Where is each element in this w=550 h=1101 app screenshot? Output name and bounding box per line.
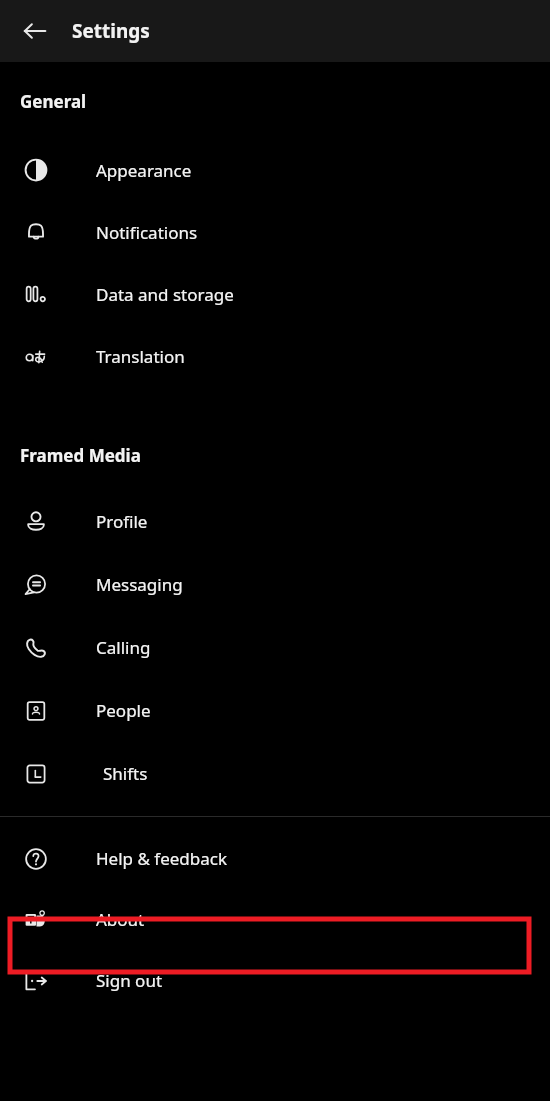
button[interactable]: Shifts <box>0 742 550 805</box>
staticText: Notifications <box>96 221 198 244</box>
button[interactable]: Sign out <box>0 950 550 1011</box>
staticText: General <box>20 90 87 113</box>
staticText: Messaging <box>96 573 183 596</box>
staticText: Profile <box>96 510 148 533</box>
button[interactable]: Help & feedback <box>0 828 550 889</box>
staticText: People <box>96 699 151 722</box>
button[interactable]: Appearance <box>0 139 550 201</box>
button[interactable]: Profile <box>0 490 550 553</box>
staticText: Framed Media <box>20 444 141 467</box>
staticText: Sign out <box>96 969 163 992</box>
staticText: Shifts <box>103 762 148 785</box>
button[interactable]: People <box>0 679 550 742</box>
button[interactable]: About <box>0 889 550 950</box>
button[interactable]: Notifications <box>0 201 550 263</box>
staticText: About <box>96 908 145 931</box>
button[interactable]: Translation <box>0 325 550 387</box>
button[interactable]: Calling <box>0 616 550 679</box>
staticText: Appearance <box>96 159 192 182</box>
button[interactable]: Data and storage <box>0 263 550 325</box>
button[interactable]: Back <box>0 0 72 62</box>
button[interactable]: Messaging <box>0 553 550 616</box>
staticText: Help & feedback <box>96 847 228 870</box>
staticText: Settings <box>72 18 150 44</box>
staticText: Calling <box>96 636 151 659</box>
staticText: Data and storage <box>96 283 234 306</box>
staticText: Translation <box>96 345 185 368</box>
